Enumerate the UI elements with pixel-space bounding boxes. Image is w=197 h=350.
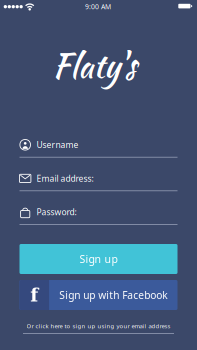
staticText: Password:	[36, 206, 76, 218]
button[interactable]: f	[19, 280, 177, 310]
staticText: Email address:	[36, 173, 93, 184]
staticText: Or click here to sign up using your emai…	[26, 322, 170, 330]
staticText: Username	[36, 139, 78, 151]
button[interactable]: Or click here to sign up using your emai…	[21, 320, 176, 336]
staticText: Sign up	[79, 252, 117, 266]
staticText: Sign up with Facebook	[59, 288, 167, 302]
staticText: 9:00 AM	[85, 2, 111, 11]
staticText: Flaty's	[52, 42, 136, 89]
staticText: f	[30, 284, 38, 306]
button[interactable]: Sign up	[19, 244, 177, 274]
